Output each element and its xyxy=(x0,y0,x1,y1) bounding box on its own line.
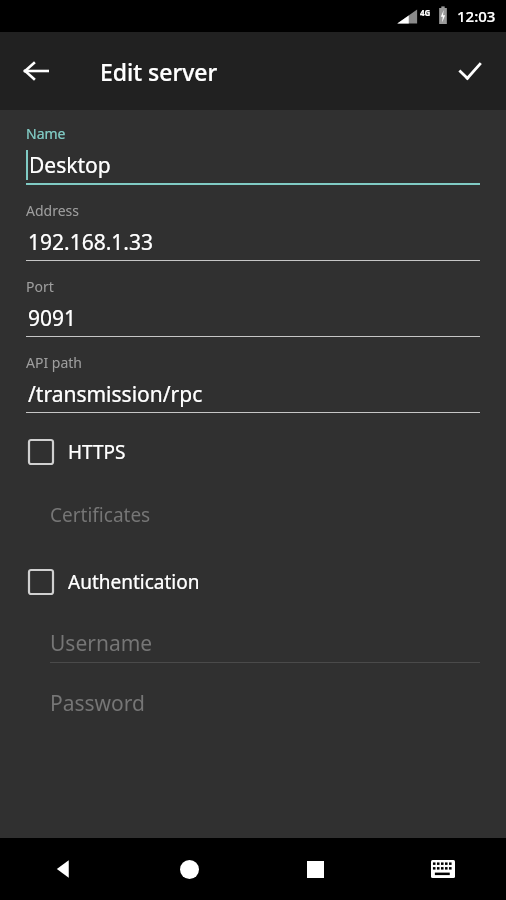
button[interactable]: Password xyxy=(50,689,480,722)
button[interactable]: Recent apps xyxy=(252,838,379,900)
staticText: Port xyxy=(26,277,54,296)
staticText: Address xyxy=(26,201,79,220)
button[interactable]: Save xyxy=(442,43,498,99)
button[interactable]: Name xyxy=(26,124,480,185)
button[interactable]: Back xyxy=(0,838,126,900)
button[interactable]: Username xyxy=(50,629,480,663)
staticText: 192.168.1.33 xyxy=(28,228,153,257)
staticText: 4G xyxy=(420,7,431,18)
staticText: API path xyxy=(26,353,82,372)
button[interactable]: Keyboard xyxy=(379,838,506,900)
staticText: Username xyxy=(50,629,153,658)
button[interactable]: HTTPS xyxy=(26,431,480,473)
staticText: Edit server xyxy=(100,56,218,87)
staticText: Desktop xyxy=(29,151,111,180)
staticText: Authentication xyxy=(68,569,200,595)
button[interactable]: API path xyxy=(26,353,480,413)
staticText: Name xyxy=(26,124,66,143)
staticText: Password xyxy=(50,689,145,718)
button[interactable]: Back xyxy=(8,43,64,99)
button[interactable]: Home xyxy=(126,838,252,900)
staticText: /transmission/rpc xyxy=(28,380,203,409)
button[interactable]: Port xyxy=(26,277,480,337)
staticText: 12:03 xyxy=(457,6,496,26)
staticText: 9091 xyxy=(28,304,77,333)
staticText: Certificates xyxy=(50,502,151,528)
button[interactable]: Certificates xyxy=(50,493,480,537)
button[interactable]: Address xyxy=(26,201,480,261)
staticText: HTTPS xyxy=(68,439,126,465)
button[interactable]: Authentication xyxy=(26,561,480,603)
